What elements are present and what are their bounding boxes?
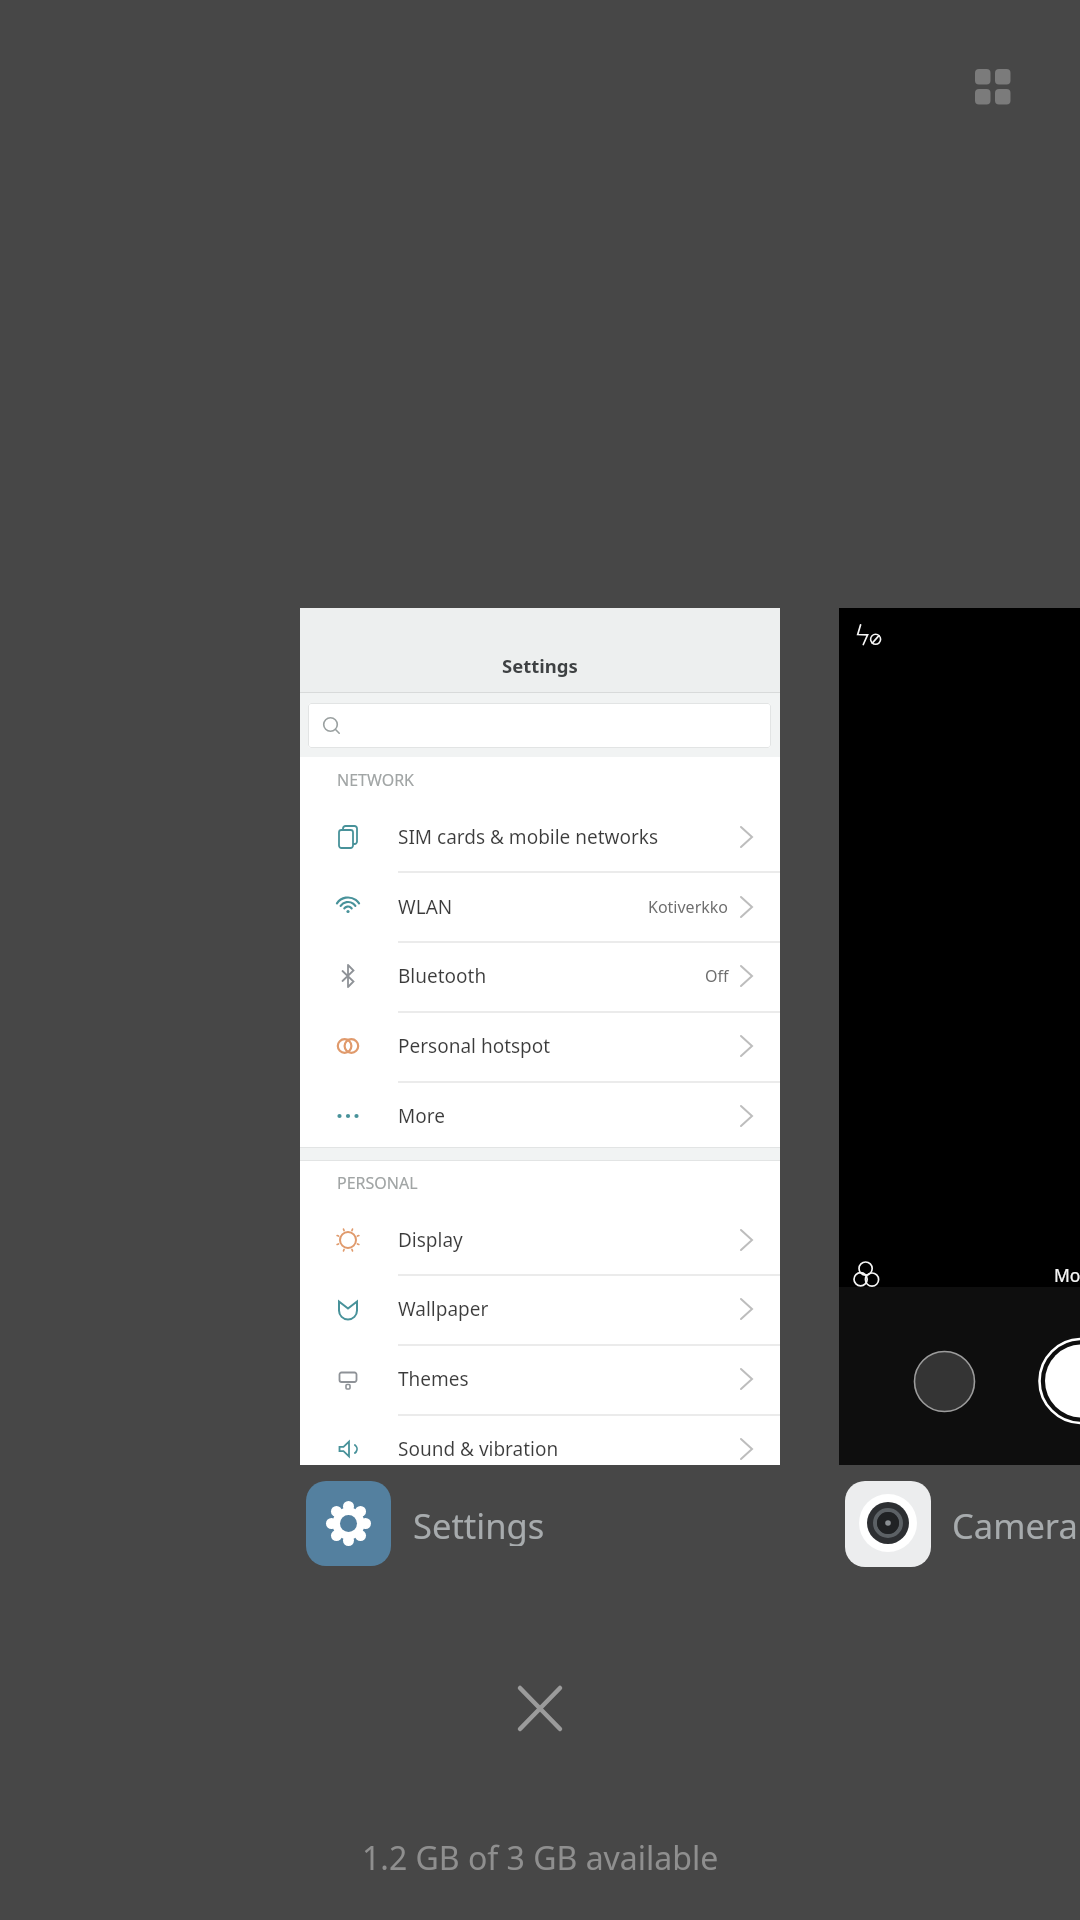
staticText: Display bbox=[398, 1227, 463, 1253]
staticText: Camera bbox=[952, 1502, 1078, 1546]
button[interactable]: Themes bbox=[300, 1344, 780, 1414]
button[interactable] bbox=[970, 64, 1015, 109]
staticText: Wallpaper bbox=[398, 1296, 489, 1322]
staticText: Off bbox=[705, 965, 729, 987]
button[interactable]: Settings bbox=[300, 608, 780, 1465]
staticText: Personal hotspot bbox=[398, 1033, 551, 1059]
button[interactable] bbox=[515, 1683, 565, 1733]
staticText: NETWORK bbox=[337, 769, 415, 791]
staticText: PERSONAL bbox=[337, 1172, 418, 1194]
staticText: Settings bbox=[413, 1502, 545, 1546]
staticText: Settings bbox=[502, 653, 578, 678]
button[interactable]: WLAN bbox=[300, 872, 780, 942]
button[interactable]: Wallpaper bbox=[300, 1274, 780, 1344]
staticText: Modes bbox=[1054, 1263, 1080, 1287]
button[interactable] bbox=[845, 1481, 931, 1567]
staticText: WLAN bbox=[398, 894, 453, 920]
staticText: Sound & vibration bbox=[398, 1436, 559, 1462]
button[interactable]: SIM cards & mobile networks bbox=[300, 802, 780, 872]
staticText: More bbox=[398, 1103, 445, 1129]
button[interactable]: Camera bbox=[952, 1502, 1080, 1546]
staticText: 1.2 GB of 3 GB available bbox=[362, 1836, 719, 1880]
staticText: Bluetooth bbox=[398, 963, 487, 989]
button[interactable]: Display bbox=[300, 1205, 780, 1275]
button[interactable] bbox=[308, 703, 771, 748]
button[interactable] bbox=[306, 1481, 391, 1566]
button[interactable]: More bbox=[300, 1081, 780, 1151]
button[interactable]: Sound & vibration bbox=[300, 1414, 780, 1484]
staticText: Themes bbox=[398, 1366, 469, 1392]
button[interactable]: Modes bbox=[839, 608, 1080, 1465]
button[interactable]: Bluetooth bbox=[300, 941, 780, 1011]
button[interactable]: Settings bbox=[413, 1502, 613, 1546]
button[interactable]: Personal hotspot bbox=[300, 1011, 780, 1081]
staticText: Kotiverkko bbox=[648, 896, 729, 918]
staticText: SIM cards & mobile networks bbox=[398, 824, 659, 850]
